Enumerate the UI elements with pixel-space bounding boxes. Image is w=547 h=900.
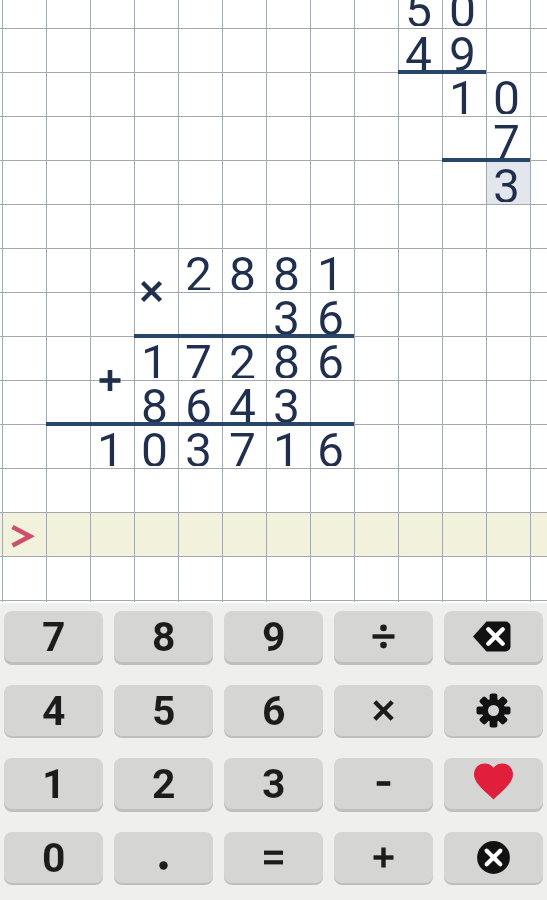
staticText: 5 [152, 687, 176, 735]
staticText: 3 [262, 760, 286, 808]
staticText: 1 [273, 422, 300, 466]
staticText: 6 [317, 334, 344, 378]
staticText: 6 [317, 290, 344, 334]
staticText: 4 [405, 26, 432, 70]
staticText: 9 [262, 613, 286, 661]
staticText: 3 [273, 378, 300, 422]
staticText: 2 [152, 760, 176, 808]
staticText: 8 [273, 246, 300, 290]
staticText: 7 [185, 334, 212, 378]
button[interactable] [334, 758, 433, 809]
button[interactable]: 0 [4, 832, 103, 883]
staticText: 3 [493, 158, 520, 202]
staticText: 8 [229, 246, 256, 290]
staticText: 8 [273, 334, 300, 378]
button[interactable]: 4 [4, 685, 103, 736]
staticText: 1 [141, 334, 168, 378]
staticText: 6 [262, 687, 286, 735]
button[interactable]: 1 [4, 758, 103, 809]
staticText: 1 [317, 246, 344, 290]
staticText: 0 [141, 422, 168, 466]
button[interactable] [224, 832, 323, 883]
button[interactable] [114, 832, 213, 883]
button[interactable]: 6 [224, 685, 323, 736]
button[interactable]: 5 [114, 685, 213, 736]
staticText: 7 [229, 422, 256, 466]
button[interactable]: 2 [114, 758, 213, 809]
staticText: 4 [42, 687, 66, 735]
button[interactable]: 7 [4, 611, 103, 662]
staticText: 2 [185, 246, 212, 290]
staticText: 3 [185, 422, 212, 466]
button[interactable]: 8 [114, 611, 213, 662]
button[interactable]: 3 [224, 758, 323, 809]
staticText: 6 [185, 378, 212, 422]
button[interactable] [444, 758, 543, 809]
staticText: 0 [493, 70, 520, 114]
staticText: 6 [317, 422, 344, 466]
staticText: 0 [42, 834, 66, 882]
staticText: 0 [449, 0, 476, 26]
button[interactable] [444, 832, 543, 883]
staticText: 7 [42, 613, 66, 661]
button[interactable]: 9 [224, 611, 323, 662]
staticText: 1 [449, 70, 476, 114]
button[interactable] [444, 685, 543, 736]
staticText: 1 [42, 760, 66, 808]
staticText: 1 [97, 422, 124, 466]
button[interactable] [334, 832, 433, 883]
button[interactable] [444, 611, 543, 662]
button[interactable] [334, 685, 433, 736]
button[interactable] [334, 611, 433, 662]
staticText: 9 [449, 26, 476, 70]
staticText: 7 [493, 114, 520, 158]
staticText: 2 [229, 334, 256, 378]
staticText: 8 [152, 613, 176, 661]
staticText: 5 [405, 0, 432, 26]
staticText: 8 [141, 378, 168, 422]
staticText: 3 [273, 290, 300, 334]
staticText: 4 [229, 378, 256, 422]
